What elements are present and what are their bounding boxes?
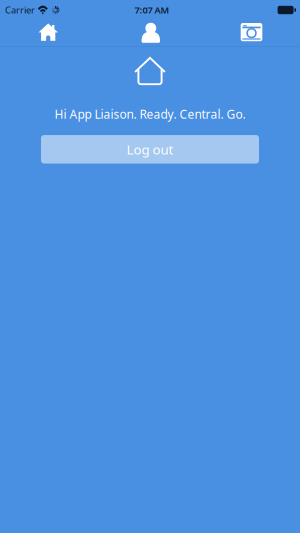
- staticText: 7:07 AM: [134, 4, 169, 16]
- staticText: Hi App Liaison. Ready. Central. Go.: [54, 106, 245, 122]
- button[interactable]: Home: [0, 20, 100, 46]
- button[interactable]: Profile: [100, 20, 200, 46]
- staticText: Carrier: [5, 4, 35, 16]
- button[interactable]: Log out: [41, 135, 259, 163]
- button[interactable]: Camera: [200, 20, 300, 46]
- staticText: Log out: [126, 140, 173, 158]
